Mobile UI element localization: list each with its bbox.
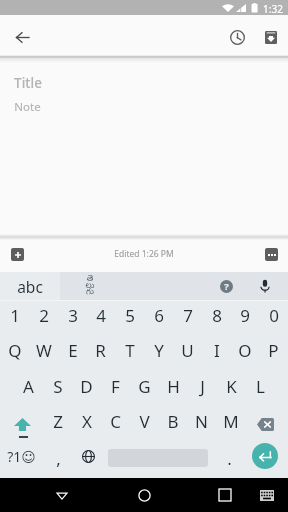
staticText: V [139, 410, 150, 433]
staticText: 0 [269, 304, 279, 327]
button[interactable]: Home [130, 481, 158, 509]
staticText: P [268, 339, 279, 362]
button[interactable]: 1 [0, 299, 29, 331]
button[interactable]: 4 [86, 299, 115, 331]
staticText: 1 [10, 304, 20, 327]
button[interactable]: Z [43, 405, 72, 437]
staticText: X [82, 410, 92, 433]
staticText: R [95, 339, 106, 362]
button[interactable]: V [130, 405, 159, 437]
button[interactable]: Voice input [251, 272, 279, 300]
staticText: I [214, 339, 220, 362]
staticText: B [167, 410, 179, 433]
button[interactable]: 9 [230, 299, 259, 331]
button[interactable]: W [29, 334, 58, 366]
staticText: A [23, 375, 34, 398]
staticText: K [226, 375, 237, 398]
button[interactable]: F [101, 370, 130, 402]
button[interactable]: Y [144, 334, 173, 366]
staticText: 4 [96, 304, 106, 327]
button[interactable]: Help [212, 272, 240, 300]
button[interactable]: R [86, 334, 115, 366]
button[interactable]: B [158, 405, 187, 437]
button[interactable]: Enter [252, 443, 278, 469]
staticText: U [181, 339, 194, 362]
button[interactable]: O [230, 334, 259, 366]
button[interactable]: Q [0, 334, 29, 366]
staticText: F [111, 375, 120, 398]
staticText: 2 [39, 304, 49, 327]
button[interactable]: E [58, 334, 87, 366]
button[interactable]: Add [11, 248, 24, 261]
staticText: abc [17, 276, 43, 297]
staticText: ?1☺ [7, 447, 36, 466]
staticText: O [238, 339, 252, 362]
staticText: Title [14, 74, 42, 92]
staticText: L [256, 375, 265, 398]
staticText: తెలుగు [84, 274, 96, 298]
staticText: Z [53, 410, 63, 433]
staticText: J [200, 375, 205, 398]
staticText: 7 [183, 304, 193, 327]
staticText: C [110, 410, 121, 433]
staticText: Edited 1:26 PM [114, 248, 174, 260]
staticText: Y [154, 339, 164, 362]
button[interactable]: Shift [2, 406, 42, 442]
button[interactable]: L [246, 370, 275, 402]
button[interactable]: S [43, 370, 72, 402]
button[interactable]: D [72, 370, 101, 402]
button[interactable]: , [44, 440, 72, 472]
button[interactable]: 3 [58, 299, 87, 331]
button[interactable]: J [188, 370, 217, 402]
staticText: , [56, 447, 61, 470]
staticText: T [125, 339, 135, 362]
staticText: E [68, 339, 78, 362]
button[interactable]: P [259, 334, 288, 366]
staticText: 8 [212, 304, 222, 327]
staticText: 6 [154, 304, 164, 327]
staticText: M [223, 410, 239, 433]
button[interactable]: ?1☺ [2, 440, 40, 472]
button[interactable]: 0 [259, 299, 288, 331]
button[interactable]: I [202, 334, 231, 366]
button[interactable]: C [101, 405, 130, 437]
staticText: 9 [240, 304, 250, 327]
button[interactable]: 2 [29, 299, 58, 331]
button[interactable]: 8 [202, 299, 231, 331]
button[interactable]: . [215, 440, 243, 472]
button[interactable]: Back [48, 481, 76, 509]
button[interactable]: More options [265, 248, 278, 261]
button[interactable]: Change language [74, 440, 102, 472]
staticText: G [138, 375, 151, 398]
button[interactable]: X [72, 405, 101, 437]
button[interactable]: Archive [257, 23, 285, 51]
button[interactable]: Switch keyboard [255, 483, 279, 507]
staticText: W [36, 339, 52, 362]
button[interactable]: A [14, 370, 43, 402]
button[interactable]: H [159, 370, 188, 402]
button[interactable]: 5 [115, 299, 144, 331]
staticText: 3 [68, 304, 78, 327]
staticText: 1:32 [263, 2, 283, 16]
staticText: S [53, 375, 63, 398]
button[interactable]: 7 [173, 299, 202, 331]
button[interactable]: N [187, 405, 216, 437]
button[interactable]: U [173, 334, 202, 366]
button[interactable]: 6 [144, 299, 173, 331]
button[interactable]: G [130, 370, 159, 402]
button[interactable]: K [217, 370, 246, 402]
button[interactable]: Backspace [250, 406, 288, 442]
button[interactable]: T [115, 334, 144, 366]
button[interactable]: Recent apps [211, 481, 239, 509]
staticText: 5 [125, 304, 135, 327]
button[interactable]: M [216, 405, 245, 437]
staticText: Q [8, 339, 22, 362]
staticText: H [167, 375, 180, 398]
button[interactable]: Navigate up [6, 21, 38, 53]
staticText: . [227, 447, 232, 470]
staticText: N [195, 410, 208, 433]
button[interactable]: Reminder [223, 23, 251, 51]
staticText: Note [14, 99, 41, 115]
staticText: ? [224, 280, 229, 293]
